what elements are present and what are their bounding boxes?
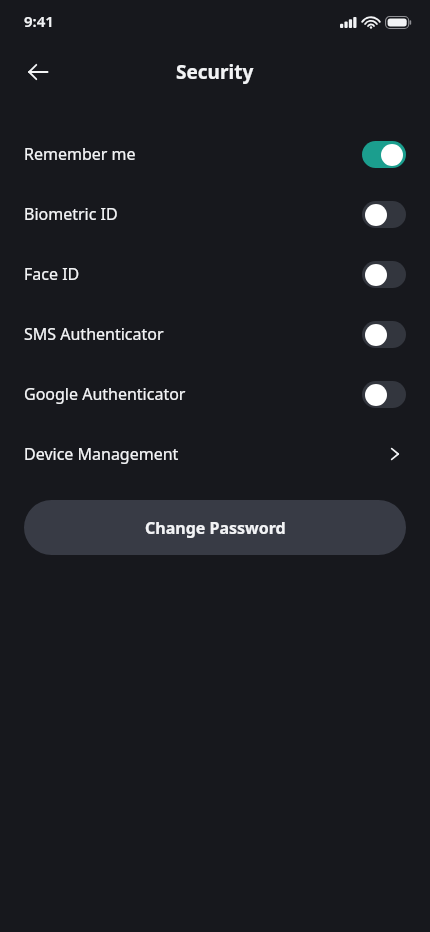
button[interactable]: Google Authenticator (0, 364, 430, 424)
staticText: Device Management (24, 443, 179, 465)
button[interactable]: Biometric ID (0, 184, 430, 244)
staticText: Change Password (145, 517, 286, 539)
staticText: Face ID (24, 263, 80, 285)
button[interactable]: Remember me (0, 124, 430, 184)
staticText: 9:41 (24, 11, 54, 31)
staticText: SMS Authenticator (24, 323, 164, 345)
button[interactable]: Back (14, 48, 62, 96)
button[interactable]: On (362, 141, 406, 168)
button[interactable]: Off (362, 321, 406, 348)
button[interactable]: Off (362, 381, 406, 408)
staticText: Google Authenticator (24, 383, 186, 405)
button[interactable]: Change Password (24, 500, 406, 555)
button[interactable]: Face ID (0, 244, 430, 304)
button[interactable]: Device Management (0, 424, 430, 484)
button[interactable]: SMS Authenticator (0, 304, 430, 364)
button[interactable]: Off (362, 261, 406, 288)
staticText: Remember me (24, 143, 136, 165)
staticText: Security (176, 59, 254, 85)
staticText: Biometric ID (24, 203, 118, 225)
button[interactable]: Off (362, 201, 406, 228)
